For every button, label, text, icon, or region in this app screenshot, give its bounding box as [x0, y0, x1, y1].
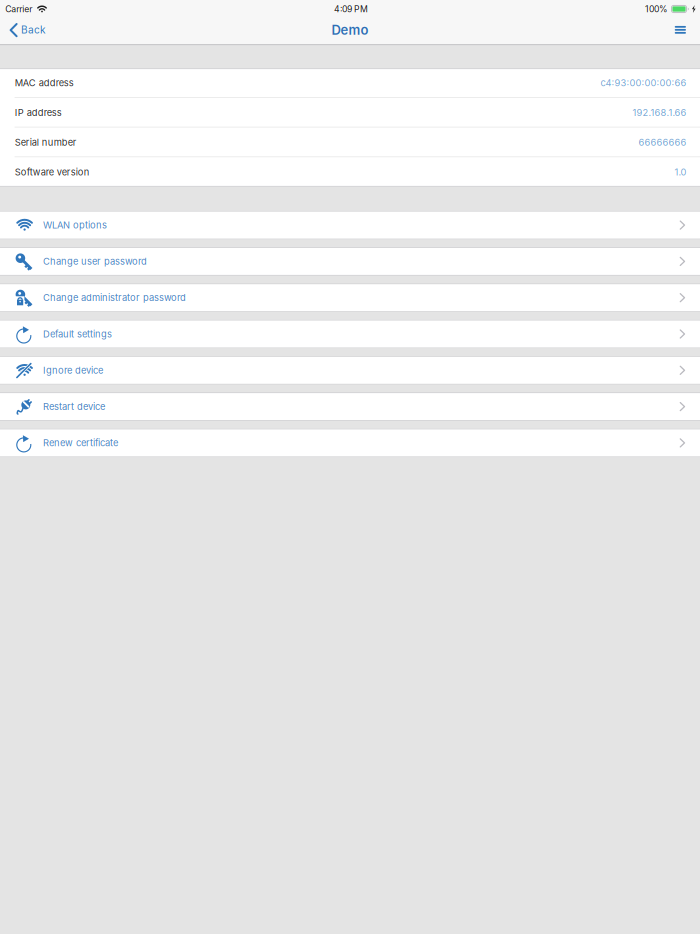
button[interactable]: Ignore device — [0, 356, 700, 385]
staticText: 66666666 — [638, 137, 686, 148]
staticText: Change administrator password — [43, 292, 186, 303]
staticText: Back — [21, 24, 46, 36]
staticText: 100% — [645, 4, 668, 14]
staticText: Change user password — [43, 256, 147, 267]
staticText: 1.0 — [674, 166, 686, 178]
button[interactable]: Change administrator password — [0, 283, 700, 312]
staticText: Ignore device — [43, 365, 103, 376]
button[interactable]: Back — [0, 17, 54, 45]
staticText: WLAN options — [43, 219, 107, 231]
staticText: Renew certificate — [43, 437, 118, 449]
staticText: c4:93:00:00:00:66 — [600, 77, 686, 89]
button[interactable]: Default settings — [0, 319, 700, 348]
staticText: Software version — [15, 166, 90, 178]
staticText: 192.168.1.66 — [632, 107, 686, 118]
staticText: MAC address — [15, 77, 74, 89]
staticText: Serial number — [15, 137, 77, 148]
button[interactable]: Menu — [665, 17, 700, 45]
staticText: Default settings — [43, 328, 112, 340]
staticText: Demo — [331, 22, 368, 38]
staticText: IP address — [15, 107, 62, 118]
staticText: Carrier — [5, 4, 32, 14]
button[interactable]: WLAN options — [0, 211, 700, 240]
button[interactable]: Renew certificate — [0, 428, 700, 457]
button[interactable]: Restart device — [0, 392, 700, 421]
button[interactable]: Change user password — [0, 247, 700, 276]
staticText: Restart device — [43, 401, 105, 412]
staticText: 4:09 PM — [334, 4, 368, 14]
